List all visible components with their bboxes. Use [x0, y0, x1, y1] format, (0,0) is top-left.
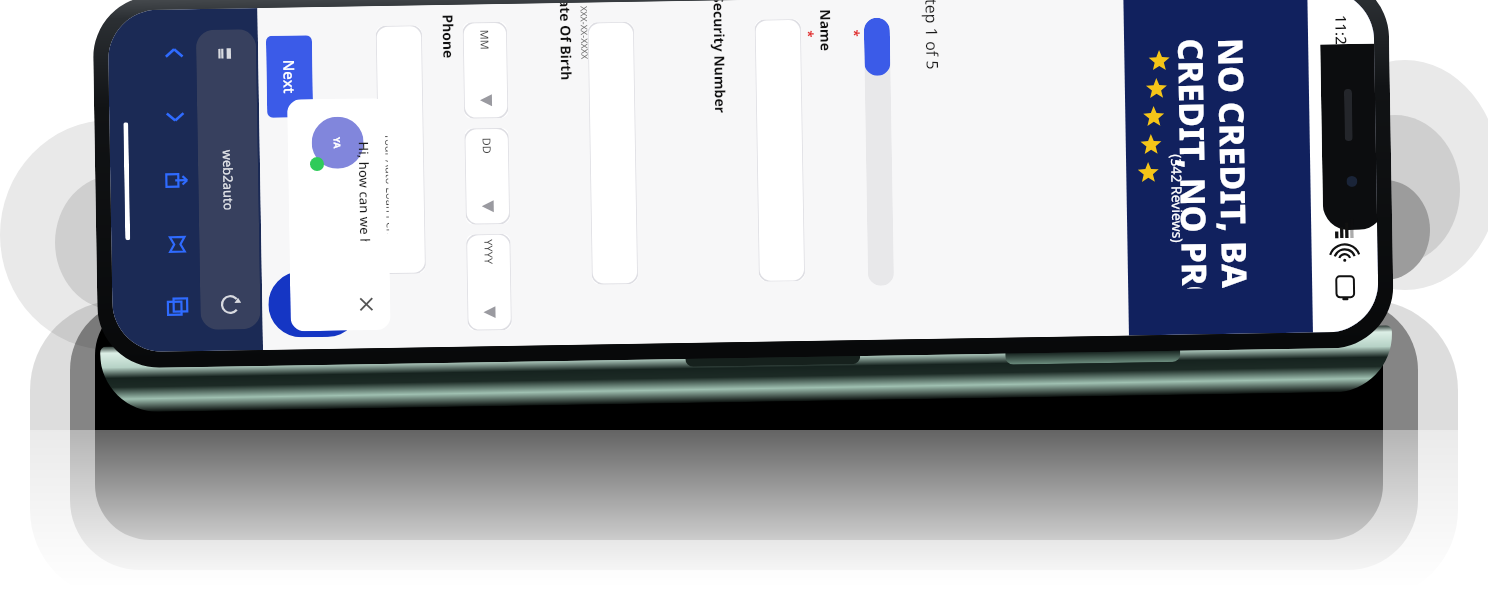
staticText: web2autos.com — [219, 149, 238, 210]
button[interactable]: Close chat — [356, 294, 376, 314]
staticText: XXX-XX-XXXX — [578, 5, 591, 60]
button[interactable]: web2autos.com — [196, 29, 261, 330]
staticText: Social Security Number — [709, 0, 730, 113]
button[interactable]: Forward — [155, 96, 196, 137]
button[interactable]: YA — [287, 98, 391, 331]
staticText: Your Auto Loan Personal ... — [382, 133, 389, 233]
button[interactable]: Back — [154, 33, 194, 74]
staticText: YYYY — [481, 239, 497, 264]
staticText: Hi, how can we help? — [355, 141, 374, 241]
staticText: Date Of Birth — [556, 3, 576, 81]
button[interactable]: Share — [156, 160, 197, 201]
staticText: CREDIT, NO PROBLEM. — [1168, 38, 1218, 289]
staticText: Name — [816, 9, 836, 51]
button[interactable] — [588, 22, 638, 284]
button[interactable]: YYYY — [466, 234, 512, 331]
staticText: * — [846, 29, 864, 37]
staticText: Step 1 of 5 — [920, 0, 943, 70]
staticText: * — [470, 35, 488, 43]
button[interactable]: Tabs — [158, 287, 199, 328]
staticText: 11:23 — [1331, 14, 1352, 54]
button[interactable] — [755, 19, 805, 282]
staticText: YA — [332, 137, 344, 149]
button[interactable]: Open chat — [268, 270, 361, 338]
staticText: * — [800, 30, 818, 38]
button[interactable]: Reader mode — [214, 41, 238, 66]
staticText: MM — [477, 30, 493, 50]
button[interactable] — [376, 25, 426, 274]
staticText: DD — [480, 137, 495, 154]
button[interactable]: MM — [463, 22, 508, 119]
staticText: Next — [279, 59, 300, 94]
staticText: (342 Reviews) — [1167, 154, 1187, 243]
staticText: Phone — [438, 14, 458, 59]
button[interactable]: DD — [464, 128, 510, 225]
button[interactable]: Bookmarks — [157, 224, 198, 265]
button[interactable]: Reload — [217, 291, 243, 318]
staticText: NO CREDIT, BAD — [1208, 37, 1258, 288]
button[interactable]: Next — [266, 35, 313, 118]
